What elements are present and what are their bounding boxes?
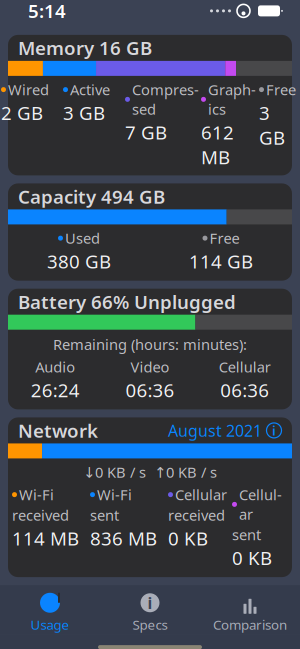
button[interactable]: August 2021	[168, 420, 282, 441]
staticText: received	[12, 505, 69, 525]
staticText: Compressed	[132, 80, 199, 119]
staticText: Video	[130, 357, 169, 377]
staticText: 7 GB	[125, 120, 167, 145]
staticText: 836 MB	[90, 526, 157, 551]
staticText: Comparison	[213, 616, 287, 633]
button[interactable]: Usage	[0, 586, 100, 633]
staticText: Wi-Fi	[97, 485, 132, 504]
button[interactable]: i	[100, 586, 200, 633]
staticText: August 2021	[168, 420, 262, 441]
staticText: 2 GB	[1, 100, 43, 125]
staticText: Cellular	[239, 485, 282, 524]
staticText: Wired	[8, 80, 49, 99]
staticText: received	[168, 505, 225, 525]
staticText: 114 GB	[189, 249, 253, 274]
staticText: 380 GB	[47, 249, 111, 274]
staticText: Specs	[132, 616, 167, 633]
staticText: 26:24	[31, 378, 80, 402]
staticText: 114 MB	[12, 526, 79, 551]
staticText: 06:36	[125, 378, 174, 402]
staticText: sent	[90, 505, 119, 525]
staticText: Used	[65, 228, 100, 248]
staticText: Cellular	[219, 357, 271, 377]
staticText: Network	[18, 418, 98, 443]
staticText: Usage	[30, 616, 69, 633]
staticText: 0 KB	[232, 545, 272, 570]
staticText: 5:14	[28, 0, 66, 23]
staticText: 3 GB	[63, 100, 105, 125]
button[interactable]: Comparison	[200, 586, 300, 633]
staticText: Remaining (hours: minutes):	[53, 335, 247, 354]
staticText: Wi-Fi	[19, 485, 54, 504]
staticText: Capacity 494 GB	[18, 184, 165, 209]
staticText: Audio	[35, 357, 75, 377]
staticText: 3 GB	[259, 100, 285, 150]
staticText: Cellular	[175, 485, 227, 504]
staticText: 612 MB	[201, 120, 234, 169]
staticText: 0 KB	[168, 526, 208, 551]
staticText: Memory 16 GB	[18, 35, 152, 60]
staticText: Free	[209, 228, 239, 248]
staticText: Active	[70, 80, 110, 99]
staticText: i	[272, 422, 276, 439]
staticText: i	[147, 592, 152, 613]
staticText: 06:36	[220, 378, 269, 402]
staticText: ↓0 KB / s ↑0 KB / s	[83, 462, 217, 482]
staticText: sent	[232, 525, 261, 544]
staticText: Battery 66% Unplugged	[18, 289, 236, 314]
staticText: Graphics	[208, 80, 256, 119]
staticText: Free	[266, 80, 296, 99]
